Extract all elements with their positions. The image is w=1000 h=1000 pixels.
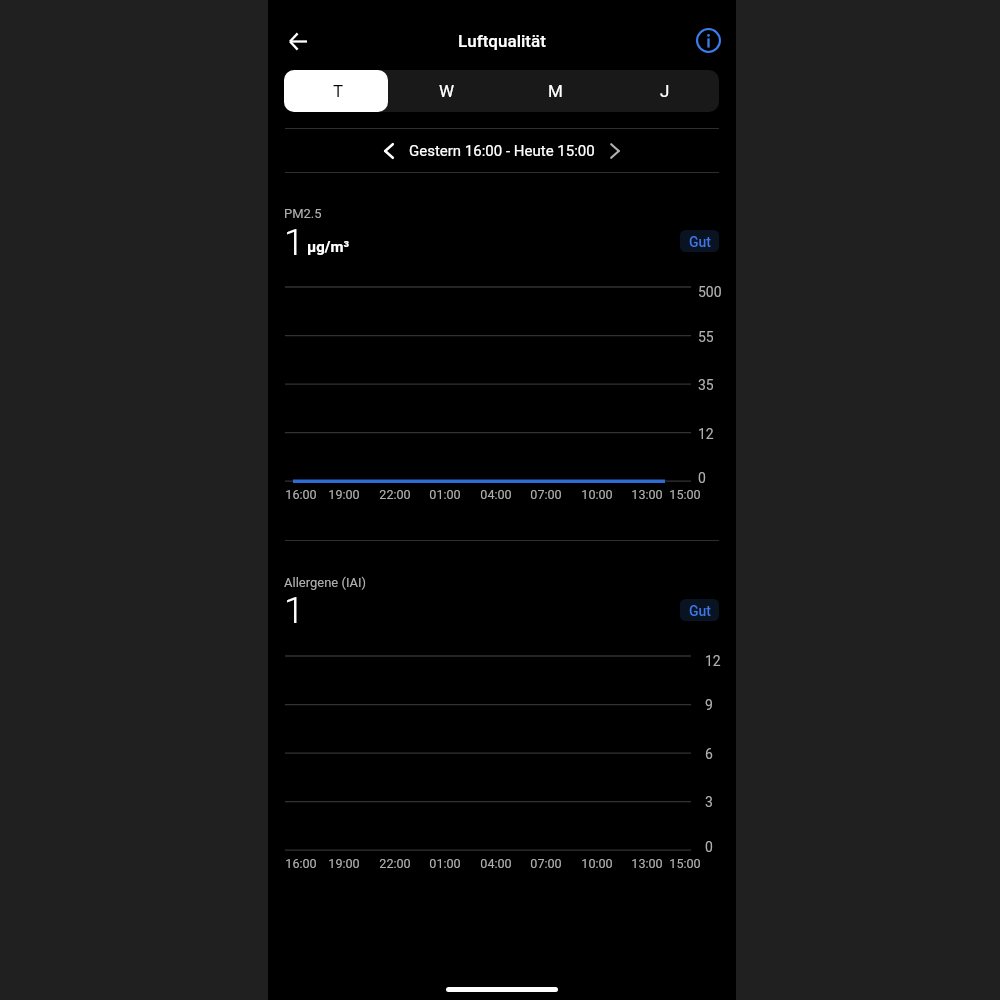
staticText: 07:00	[526, 856, 566, 871]
staticText: 16:00	[281, 856, 321, 871]
button[interactable]: Back	[274, 17, 322, 65]
staticText: Gut	[689, 603, 711, 619]
staticText: 10:00	[577, 487, 617, 502]
button[interactable]: Next period	[598, 131, 632, 171]
staticText: 13:00	[627, 487, 667, 502]
staticText: 12	[705, 653, 721, 669]
staticText: 07:00	[526, 487, 566, 502]
button[interactable]: Gut	[680, 230, 719, 252]
staticText: M	[548, 81, 563, 101]
staticText: 19:00	[324, 856, 364, 871]
staticText: 0	[705, 839, 713, 855]
button[interactable]: M	[501, 70, 610, 112]
staticText: µg/m³	[307, 238, 349, 256]
button[interactable]: Information	[686, 18, 730, 62]
staticText: 15:00	[665, 856, 705, 871]
staticText: T	[333, 81, 344, 101]
staticText: W	[439, 81, 455, 101]
staticText: 22:00	[375, 856, 415, 871]
staticText: 55	[698, 329, 714, 345]
button[interactable]: J	[610, 70, 719, 112]
staticText: 12	[698, 426, 714, 442]
staticText: 10:00	[577, 856, 617, 871]
staticText: 15:00	[665, 487, 705, 502]
staticText: 3	[705, 794, 713, 810]
staticText: Luftqualität	[268, 31, 736, 51]
staticText: Gestern 16:00 - Heute 15:00	[409, 142, 595, 160]
staticText: 6	[705, 746, 713, 762]
staticText: 500	[698, 284, 722, 300]
staticText: 01:00	[425, 487, 465, 502]
staticText: 1	[284, 590, 304, 632]
staticText: PM2.5	[284, 206, 322, 221]
staticText: 16:00	[281, 487, 321, 502]
staticText: 19:00	[324, 487, 364, 502]
button[interactable]: Gestern 16:00 - Heute 15:00	[406, 142, 598, 160]
staticText: 1	[284, 222, 304, 264]
staticText: 0	[698, 470, 706, 486]
staticText: Allergene (IAI)	[284, 575, 367, 590]
button[interactable]: Previous period	[372, 131, 406, 171]
staticText: 22:00	[375, 487, 415, 502]
button[interactable]: Gut	[680, 599, 719, 621]
staticText: 9	[705, 697, 713, 713]
button[interactable]: T	[284, 70, 392, 112]
staticText: Gut	[689, 234, 711, 250]
staticText: 04:00	[476, 487, 516, 502]
staticText: 13:00	[627, 856, 667, 871]
staticText: J	[660, 81, 670, 101]
button[interactable]: W	[392, 70, 501, 112]
staticText: 04:00	[476, 856, 516, 871]
staticText: 01:00	[425, 856, 465, 871]
staticText: 35	[698, 377, 714, 393]
